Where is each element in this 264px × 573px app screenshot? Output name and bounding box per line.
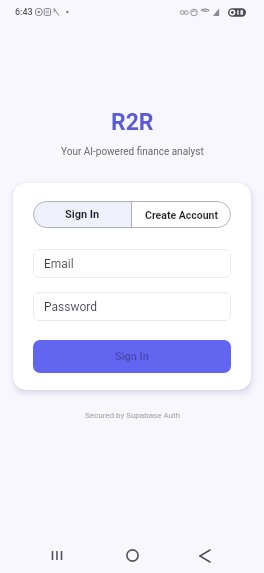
button[interactable]: Recent apps: [35, 538, 79, 573]
button[interactable]: Sign In: [33, 201, 131, 228]
button[interactable]: Sign In: [33, 340, 231, 373]
button[interactable]: Email: [33, 249, 231, 278]
button[interactable]: Back: [183, 538, 227, 573]
button[interactable]: Home: [110, 538, 154, 573]
button[interactable]: Create Account: [132, 201, 231, 228]
staticText: 6:43: [15, 7, 33, 18]
button[interactable]: Password: [33, 292, 231, 321]
staticText: Email: [44, 257, 74, 271]
staticText: Your AI-powered finance analyst: [61, 146, 204, 158]
staticText: Sign In: [65, 208, 100, 221]
staticText: Password: [44, 300, 98, 314]
staticText: Create Account: [145, 209, 219, 221]
staticText: Secured by Supabase Auth: [85, 411, 180, 420]
staticText: R2R: [111, 109, 154, 136]
staticText: Sign In: [115, 350, 149, 363]
